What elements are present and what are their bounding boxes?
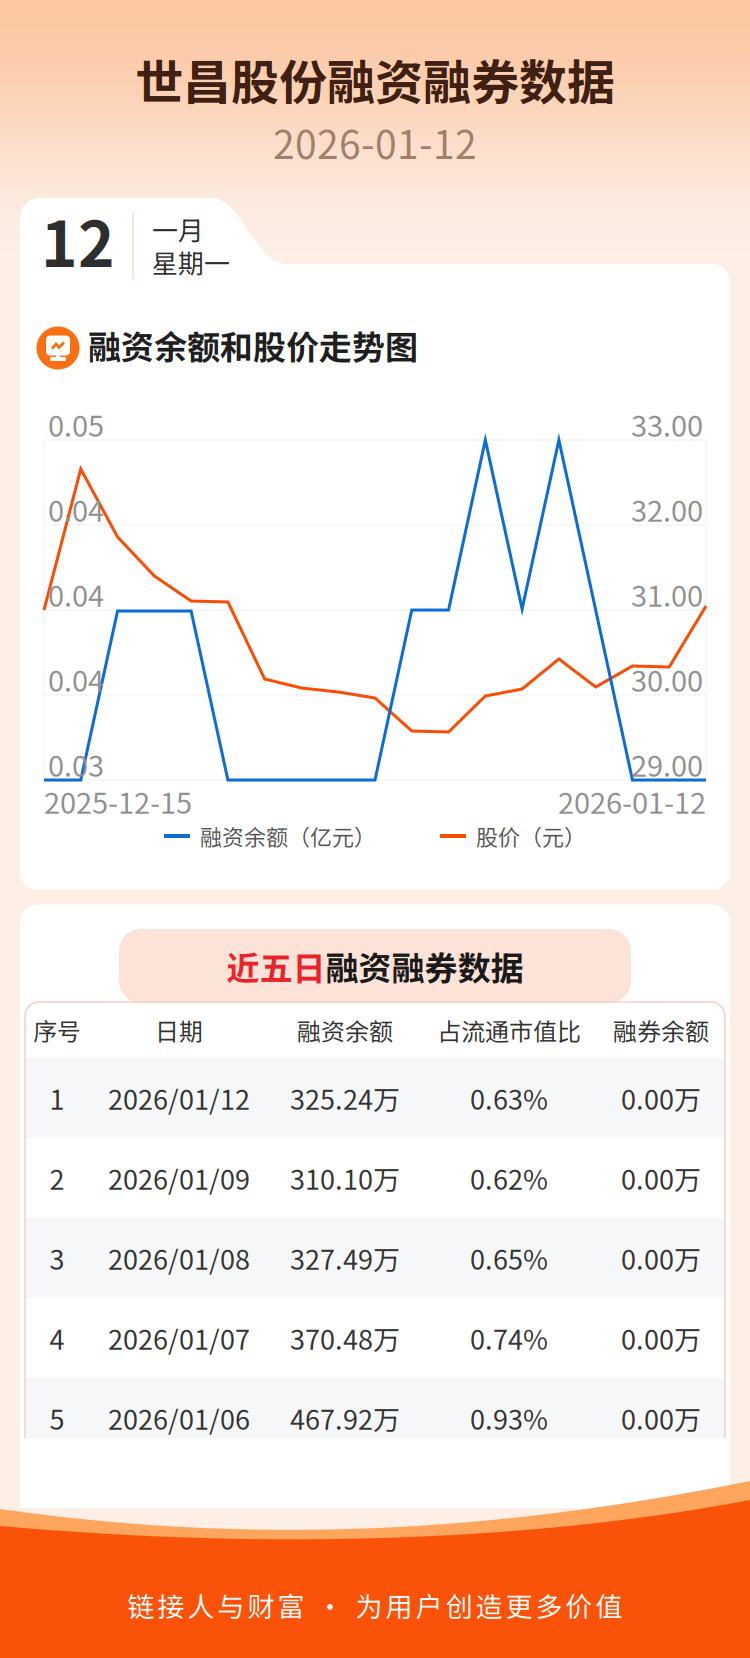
- staticText: 一月: [152, 210, 204, 248]
- staticText: 4: [49, 1318, 64, 1358]
- staticText: 2026/01/06: [108, 1398, 250, 1438]
- staticText: 股价（元）: [476, 820, 586, 852]
- staticText: 0.74%: [470, 1318, 548, 1358]
- staticText: 1: [49, 1078, 64, 1118]
- staticText: 日期: [155, 1013, 203, 1047]
- staticText: 310.10万: [290, 1158, 400, 1198]
- staticText: 融资余额: [297, 1013, 393, 1047]
- staticText: 30.00: [631, 658, 703, 700]
- staticText: 世昌股份融资融券数据: [135, 44, 615, 114]
- staticText: 0.00万: [621, 1398, 701, 1438]
- staticText: 占流通市值比: [437, 1013, 581, 1047]
- staticText: 星期一: [152, 243, 230, 281]
- staticText: 0.62%: [470, 1158, 548, 1198]
- staticText: 29.00: [631, 743, 703, 785]
- staticText: 融资融券数据: [325, 942, 523, 990]
- staticText: 2026-01-12: [558, 780, 706, 822]
- staticText: 3: [49, 1238, 64, 1278]
- staticText: 0.00万: [621, 1158, 701, 1198]
- staticText: 0.04: [48, 658, 104, 700]
- staticText: 2026/01/08: [108, 1238, 250, 1278]
- staticText: 0.00万: [621, 1238, 701, 1278]
- staticText: 2026-01-12: [273, 114, 477, 170]
- staticText: 融券余额: [613, 1013, 709, 1047]
- staticText: 325.24万: [290, 1078, 400, 1118]
- staticText: 0.00万: [621, 1078, 701, 1118]
- staticText: 467.92万: [290, 1398, 400, 1438]
- staticText: 0.93%: [470, 1398, 548, 1438]
- staticText: 链接人与财富 · 为用户创造更多价值: [127, 1585, 622, 1625]
- staticText: 32.00: [631, 488, 703, 530]
- staticText: 0.04: [48, 573, 104, 615]
- staticText: 0.04: [48, 488, 104, 530]
- staticText: 0.03: [48, 743, 104, 785]
- staticText: 0.63%: [470, 1078, 548, 1118]
- staticText: 2026/01/09: [108, 1158, 250, 1198]
- staticText: 5: [49, 1398, 64, 1438]
- staticText: 近五日: [226, 942, 325, 990]
- staticText: 12: [41, 195, 115, 285]
- staticText: 327.49万: [290, 1238, 400, 1278]
- staticText: 序号: [33, 1013, 81, 1047]
- staticText: 31.00: [631, 573, 703, 615]
- staticText: 0.65%: [470, 1238, 548, 1278]
- staticText: 融资余额（亿元）: [200, 820, 376, 852]
- staticText: 0.05: [48, 403, 104, 445]
- staticText: 370.48万: [290, 1318, 400, 1358]
- staticText: 33.00: [631, 403, 703, 445]
- staticText: 2: [49, 1158, 64, 1198]
- staticText: 2025-12-15: [44, 780, 192, 822]
- staticText: 融资余额和股价走势图: [88, 321, 418, 369]
- staticText: 0.00万: [621, 1318, 701, 1358]
- staticText: 2026/01/12: [108, 1078, 250, 1118]
- staticText: 2026/01/07: [108, 1318, 250, 1358]
